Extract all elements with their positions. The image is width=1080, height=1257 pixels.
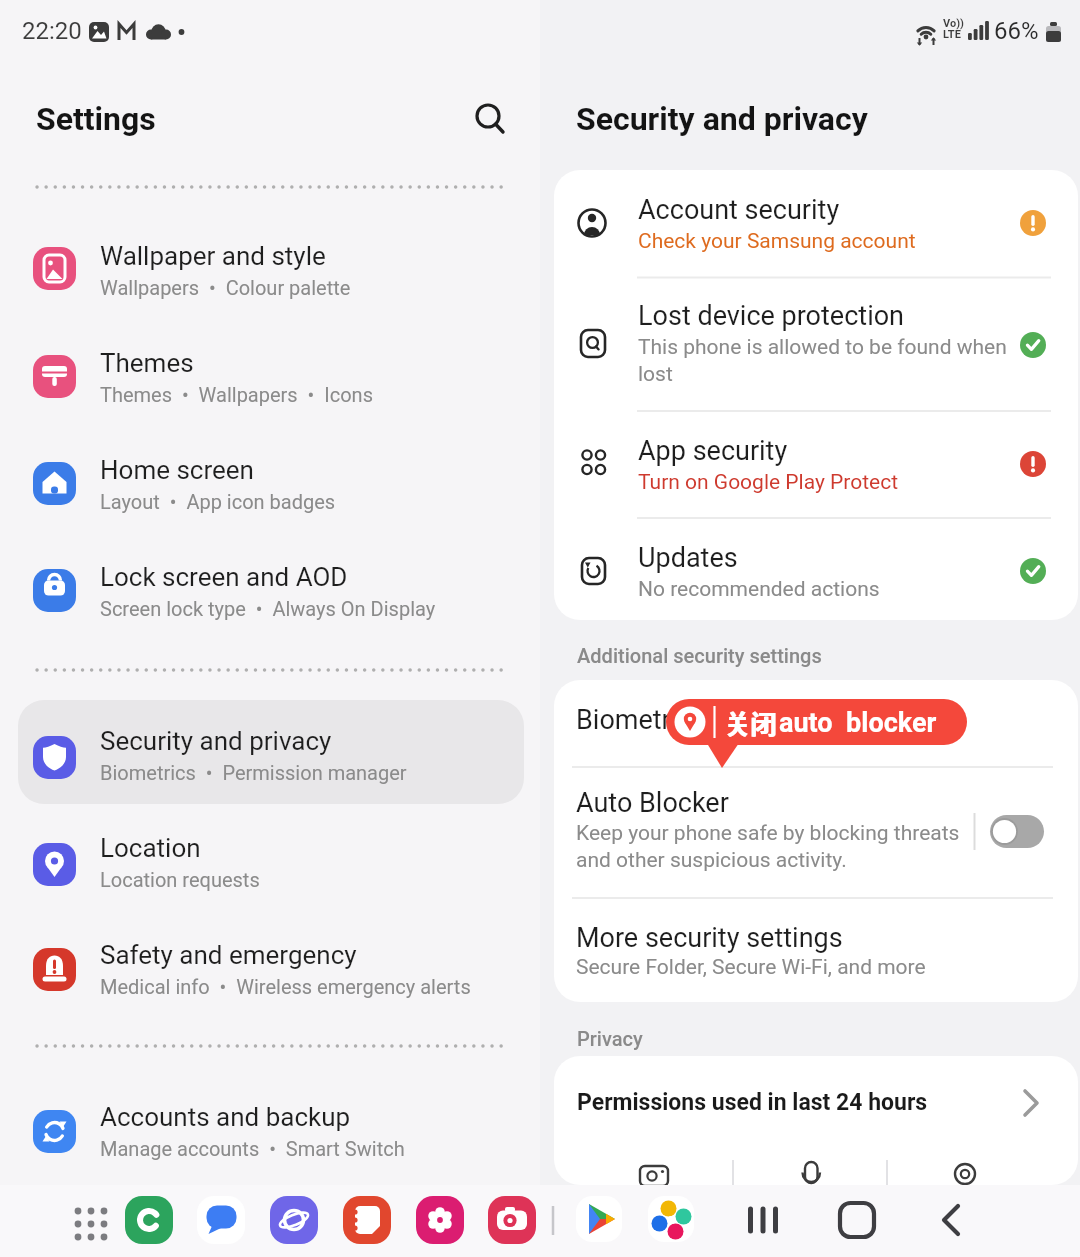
- staticText: Location: [100, 833, 201, 863]
- button[interactable]: [10, 831, 526, 923]
- button[interactable]: [63, 1192, 119, 1248]
- staticText: Wallpapers • Colour palette: [100, 276, 351, 299]
- button[interactable]: [339, 1192, 395, 1248]
- button[interactable]: [554, 1064, 1078, 1132]
- staticText: App security: [638, 435, 788, 467]
- staticText: Account security: [638, 194, 840, 226]
- staticText: 关闭: [725, 704, 778, 742]
- button[interactable]: [829, 1192, 885, 1248]
- staticText: 66%: [994, 17, 1039, 45]
- button[interactable]: [193, 1192, 249, 1248]
- button[interactable]: [121, 1192, 177, 1248]
- staticText: No recommended actions: [638, 577, 880, 602]
- staticText: LTE: [943, 28, 961, 41]
- button[interactable]: [10, 235, 526, 327]
- staticText: Security and privacy: [100, 726, 332, 756]
- staticText: Wallpaper and style: [100, 241, 326, 271]
- staticText: Security and privacy: [576, 100, 868, 138]
- staticText: Vo)): [943, 17, 964, 30]
- button[interactable]: [923, 1192, 979, 1248]
- staticText: Screen lock type • Always On Display: [100, 597, 436, 620]
- button[interactable]: [554, 178, 1078, 277]
- button[interactable]: [554, 419, 1078, 518]
- staticText: Biometrics: [576, 704, 706, 736]
- staticText: Additional security settings: [577, 644, 822, 667]
- button[interactable]: [554, 688, 1078, 767]
- button[interactable]: [571, 1192, 627, 1248]
- staticText: Safety and emergency: [100, 940, 357, 970]
- button[interactable]: [266, 1192, 322, 1248]
- button[interactable]: [18, 700, 524, 804]
- button[interactable]: [10, 450, 526, 542]
- staticText: Auto Blocker: [576, 787, 729, 819]
- staticText: This phone is allowed to be found when: [638, 335, 1007, 360]
- button[interactable]: [10, 557, 526, 649]
- button[interactable]: [412, 1192, 468, 1248]
- button[interactable]: [554, 526, 1078, 618]
- staticText: Location requests: [100, 868, 260, 891]
- button[interactable]: [484, 1192, 540, 1248]
- staticText: 22:20: [22, 17, 82, 45]
- staticText: Medical info • Wireless emergency alerts: [100, 975, 471, 998]
- staticText: Secure Folder, Secure Wi-Fi, and more: [576, 955, 926, 980]
- button[interactable]: [643, 1192, 699, 1248]
- staticText: More security settings: [576, 922, 843, 954]
- button[interactable]: [10, 936, 526, 1028]
- button[interactable]: [10, 343, 526, 435]
- button[interactable]: [554, 775, 1078, 898]
- staticText: Settings: [36, 100, 156, 138]
- staticText: Biometrics • Permission manager: [100, 761, 407, 784]
- staticText: Layout • App icon badges: [100, 490, 336, 513]
- staticText: 关闭: [724, 704, 777, 742]
- button[interactable]: [554, 285, 1078, 411]
- staticText: Check your Samsung account: [638, 229, 916, 254]
- staticText: Updates: [638, 542, 738, 574]
- button[interactable]: [10, 1098, 526, 1190]
- button[interactable]: [554, 906, 1078, 1000]
- staticText: Lost device protection: [638, 300, 905, 332]
- button[interactable]: [735, 1192, 791, 1248]
- staticText: Lock screen and AOD: [100, 562, 348, 592]
- staticText: Accounts and backup: [100, 1102, 351, 1132]
- staticText: Themes: [100, 348, 194, 378]
- staticText: and other suspicious activity.: [576, 848, 847, 873]
- staticText: Permissions used in last 24 hours: [577, 1089, 928, 1116]
- staticText: Home screen: [100, 455, 254, 485]
- staticText: Themes • Wallpapers • Icons: [100, 383, 373, 406]
- staticText: Keep your phone safe by blocking threats: [576, 821, 960, 846]
- staticText: lost: [638, 362, 673, 387]
- staticText: Manage accounts • Smart Switch: [100, 1137, 405, 1160]
- staticText: auto blocker: [779, 707, 937, 739]
- staticText: Privacy: [577, 1027, 643, 1050]
- staticText: Turn on Google Play Protect: [638, 470, 899, 495]
- button[interactable]: [470, 98, 514, 142]
- button[interactable]: [985, 808, 1051, 854]
